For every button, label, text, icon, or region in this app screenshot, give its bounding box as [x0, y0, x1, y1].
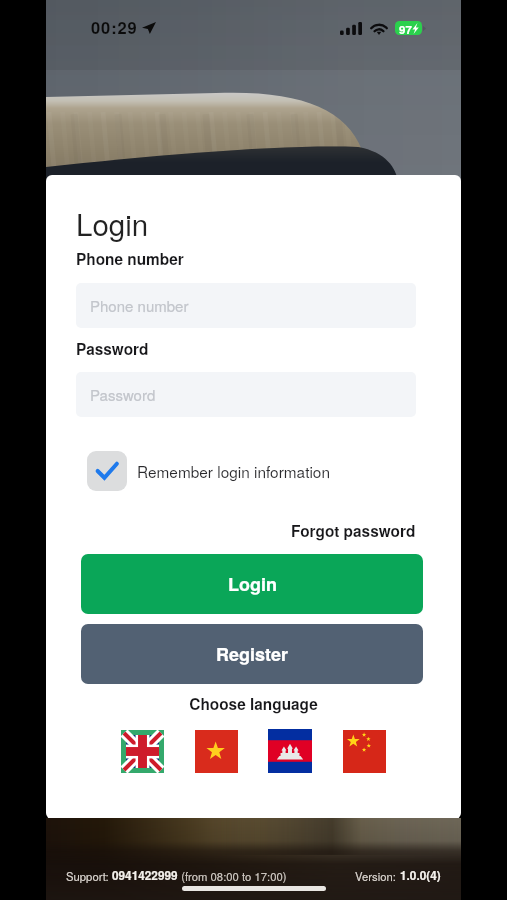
button[interactable]: Remember login information: [87, 451, 330, 491]
staticText: 00:29: [91, 15, 138, 39]
button[interactable]: Password: [76, 372, 416, 417]
staticText: Phone number: [76, 248, 184, 270]
button[interactable]: English: [121, 730, 164, 773]
staticText: Forgot password: [291, 520, 416, 542]
button[interactable]: Khmer: [268, 729, 312, 773]
button[interactable]: Vietnamese: [195, 730, 238, 773]
staticText: Password: [90, 384, 156, 405]
staticText: (from 08:00 to 17:00): [178, 868, 287, 884]
button[interactable]: Chinese: [343, 730, 386, 773]
staticText: Password: [76, 338, 149, 360]
button[interactable]: Phone number: [76, 283, 416, 328]
staticText: Version:: [355, 868, 400, 884]
staticText: Support:: [66, 868, 112, 884]
button[interactable]: Forgot password: [291, 520, 416, 542]
staticText: 0941422999: [112, 867, 178, 884]
button[interactable]: Login: [81, 554, 423, 614]
staticText: Remember login information: [137, 460, 330, 482]
staticText: Register: [216, 641, 288, 667]
button[interactable]: Register: [81, 624, 423, 684]
staticText: Phone number: [90, 295, 189, 316]
staticText: Login: [76, 202, 149, 244]
staticText: 1.0.0(4): [400, 867, 441, 884]
staticText: Login: [228, 571, 277, 597]
staticText: 97: [399, 21, 412, 35]
staticText: Choose language: [46, 693, 461, 715]
